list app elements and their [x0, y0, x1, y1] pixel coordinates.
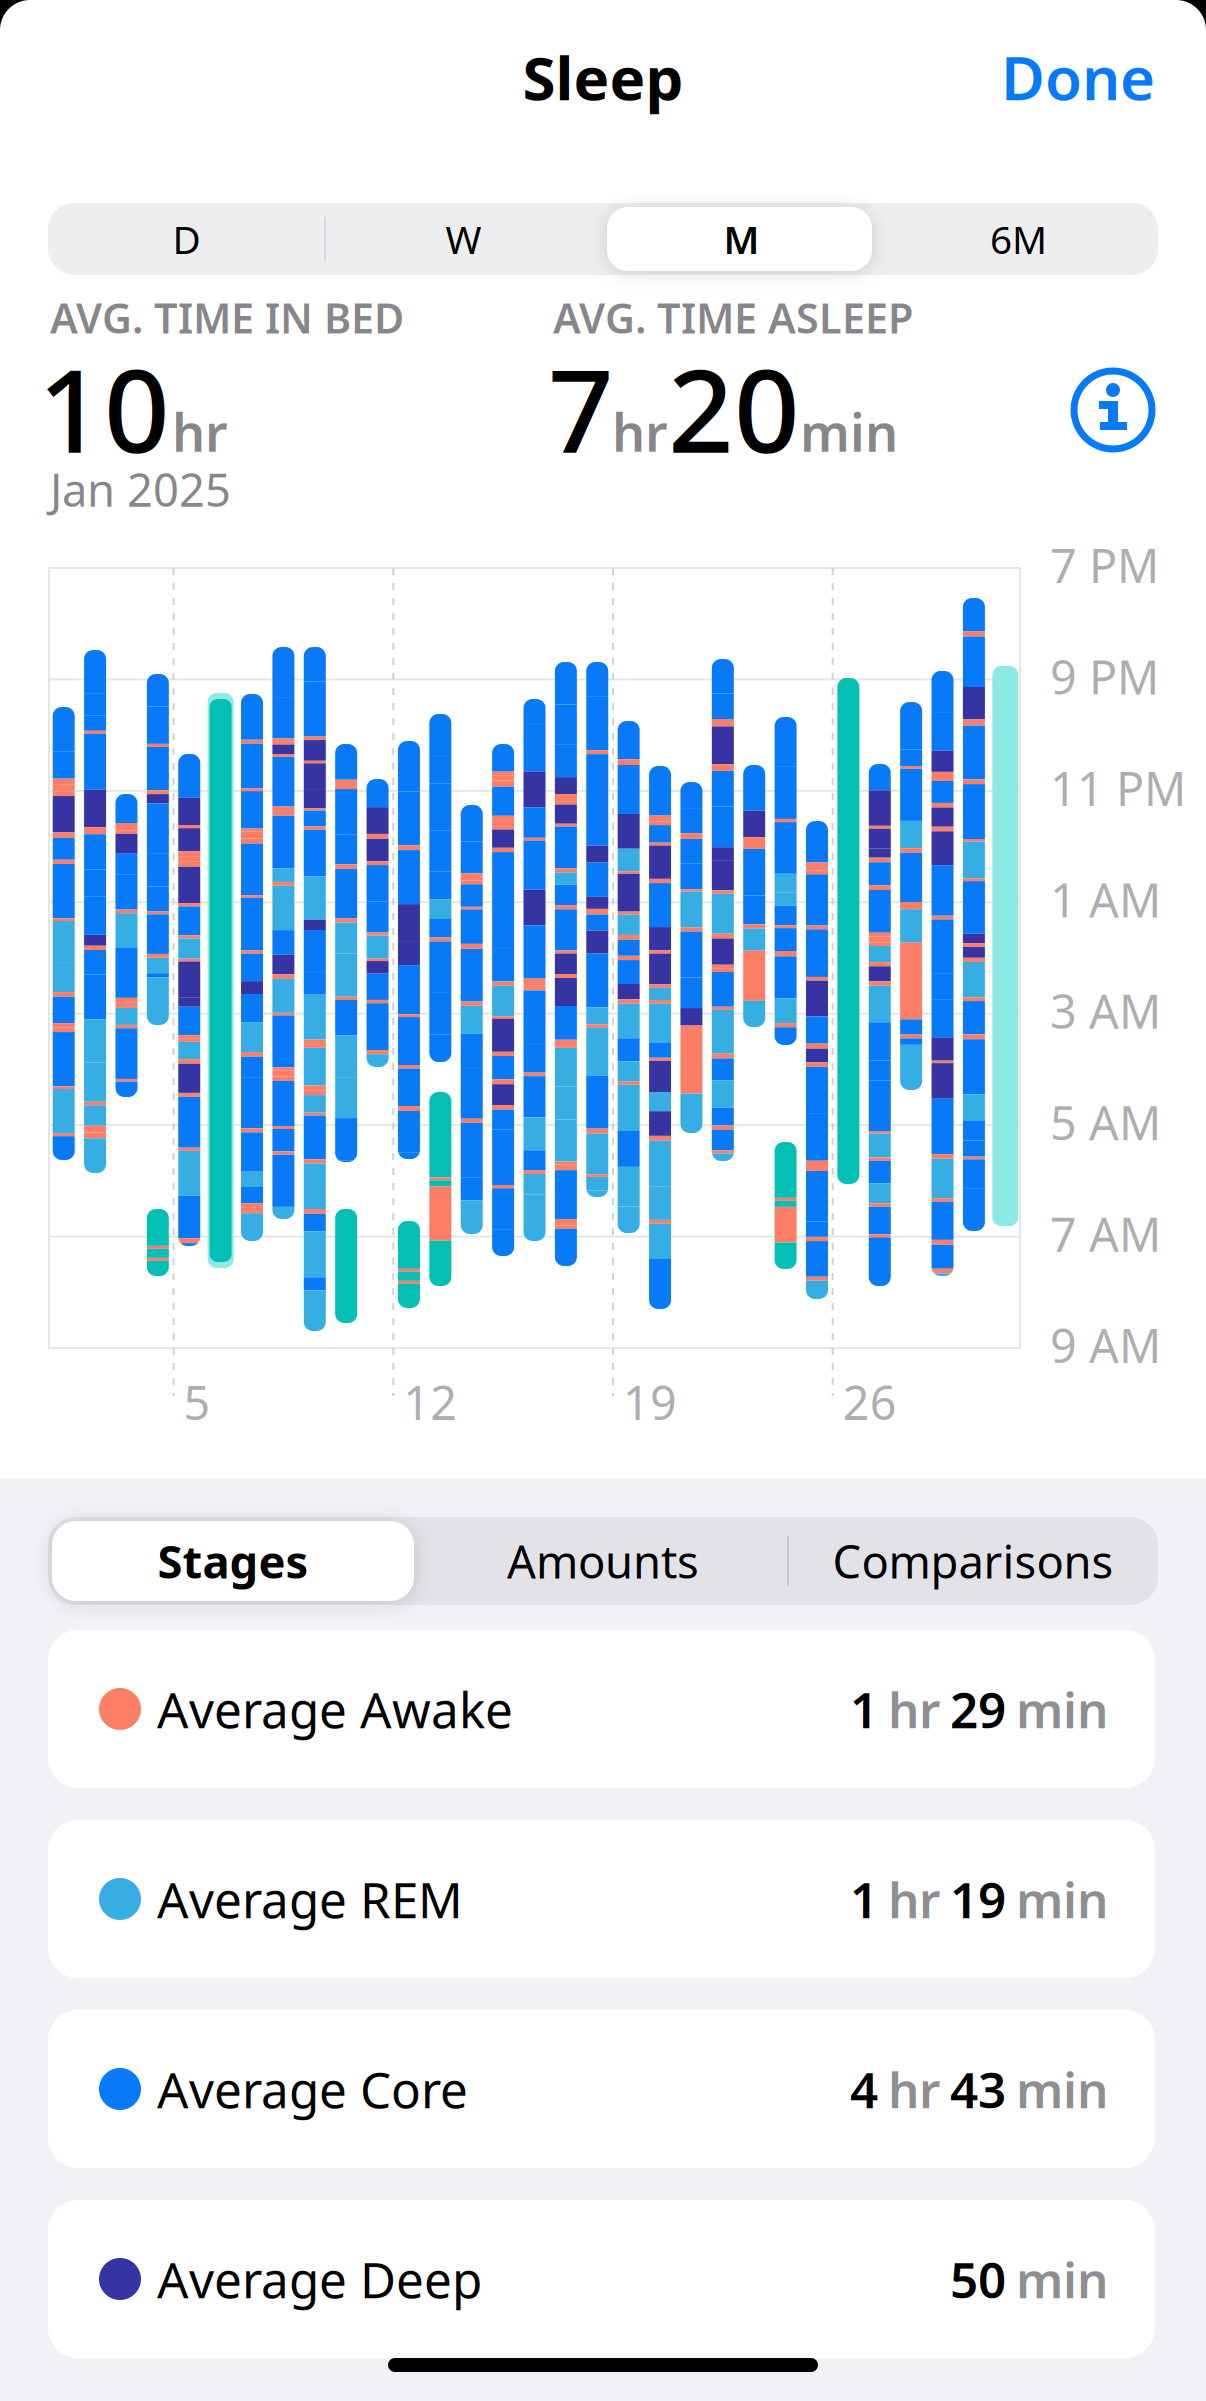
staticText: min	[1016, 1866, 1108, 1932]
button[interactable]: Average Awake	[48, 1630, 1155, 1788]
staticText: 6M	[990, 213, 1047, 265]
staticText: 19	[623, 1371, 677, 1433]
staticText: 5	[183, 1371, 210, 1433]
staticText: Amounts	[507, 1531, 699, 1591]
staticText: min	[1016, 1676, 1108, 1742]
staticText: 29	[950, 1676, 1006, 1742]
staticText: 7 PM	[1050, 534, 1159, 596]
staticText: Average Awake	[157, 1676, 513, 1742]
button[interactable]: Average Deep	[48, 2200, 1155, 2358]
staticText: Average Core	[157, 2056, 468, 2122]
staticText: 26	[843, 1371, 897, 1433]
staticText: Stages	[157, 1531, 308, 1591]
button[interactable]	[607, 207, 872, 271]
staticText: AVG. TIME ASLEEP	[553, 290, 913, 345]
staticText: Average Deep	[157, 2246, 482, 2312]
staticText: 5 AM	[1050, 1091, 1161, 1153]
staticText: 11 PM	[1050, 757, 1186, 819]
staticText: 10	[38, 332, 170, 484]
staticText: min	[800, 397, 898, 466]
staticText: D	[172, 213, 200, 265]
staticText: hr	[612, 397, 668, 466]
staticText: 9 AM	[1050, 1314, 1161, 1376]
staticText: 1	[850, 1676, 878, 1742]
staticText: 7 AM	[1050, 1203, 1161, 1265]
staticText: hr	[888, 2056, 940, 2122]
staticText: Done	[1001, 37, 1155, 117]
staticText: Average REM	[157, 1866, 463, 1932]
button[interactable]: 6M	[880, 203, 1157, 275]
button[interactable]: Stages	[48, 1517, 418, 1605]
staticText: Sleep	[522, 37, 683, 117]
staticText: W	[445, 213, 481, 265]
staticText: 1	[850, 1866, 878, 1932]
button[interactable]: Amounts	[418, 1517, 788, 1605]
staticText: 7	[548, 332, 614, 484]
staticText: M	[723, 213, 759, 265]
button[interactable]	[52, 1521, 414, 1601]
staticText: Comparisons	[832, 1531, 1113, 1591]
staticText: hr	[172, 397, 228, 466]
staticText: min	[1016, 2056, 1108, 2122]
staticText: hr	[888, 1676, 940, 1742]
button[interactable]: Average REM	[48, 1820, 1155, 1978]
staticText: Jan 2025	[50, 459, 231, 519]
button[interactable]	[1074, 371, 1152, 449]
button[interactable]: M	[603, 203, 880, 275]
staticText: 12	[403, 1371, 457, 1433]
staticText: hr	[888, 1866, 940, 1932]
button[interactable]: Average Core	[48, 2010, 1155, 2168]
staticText: min	[1016, 2246, 1108, 2312]
staticText: 20	[668, 332, 800, 484]
button[interactable]: W	[325, 203, 602, 275]
button[interactable]: Comparisons	[788, 1517, 1158, 1605]
staticText: 4	[850, 2056, 878, 2122]
staticText: 19	[950, 1866, 1006, 1932]
staticText: 1 AM	[1050, 868, 1161, 930]
staticText: 50	[950, 2246, 1006, 2312]
staticText: AVG. TIME IN BED	[50, 290, 404, 345]
staticText: 43	[950, 2056, 1006, 2122]
button[interactable]: D	[48, 203, 325, 275]
button[interactable]: Done	[855, 45, 1155, 109]
staticText: 3 AM	[1050, 980, 1161, 1042]
staticText: 9 PM	[1050, 645, 1159, 707]
